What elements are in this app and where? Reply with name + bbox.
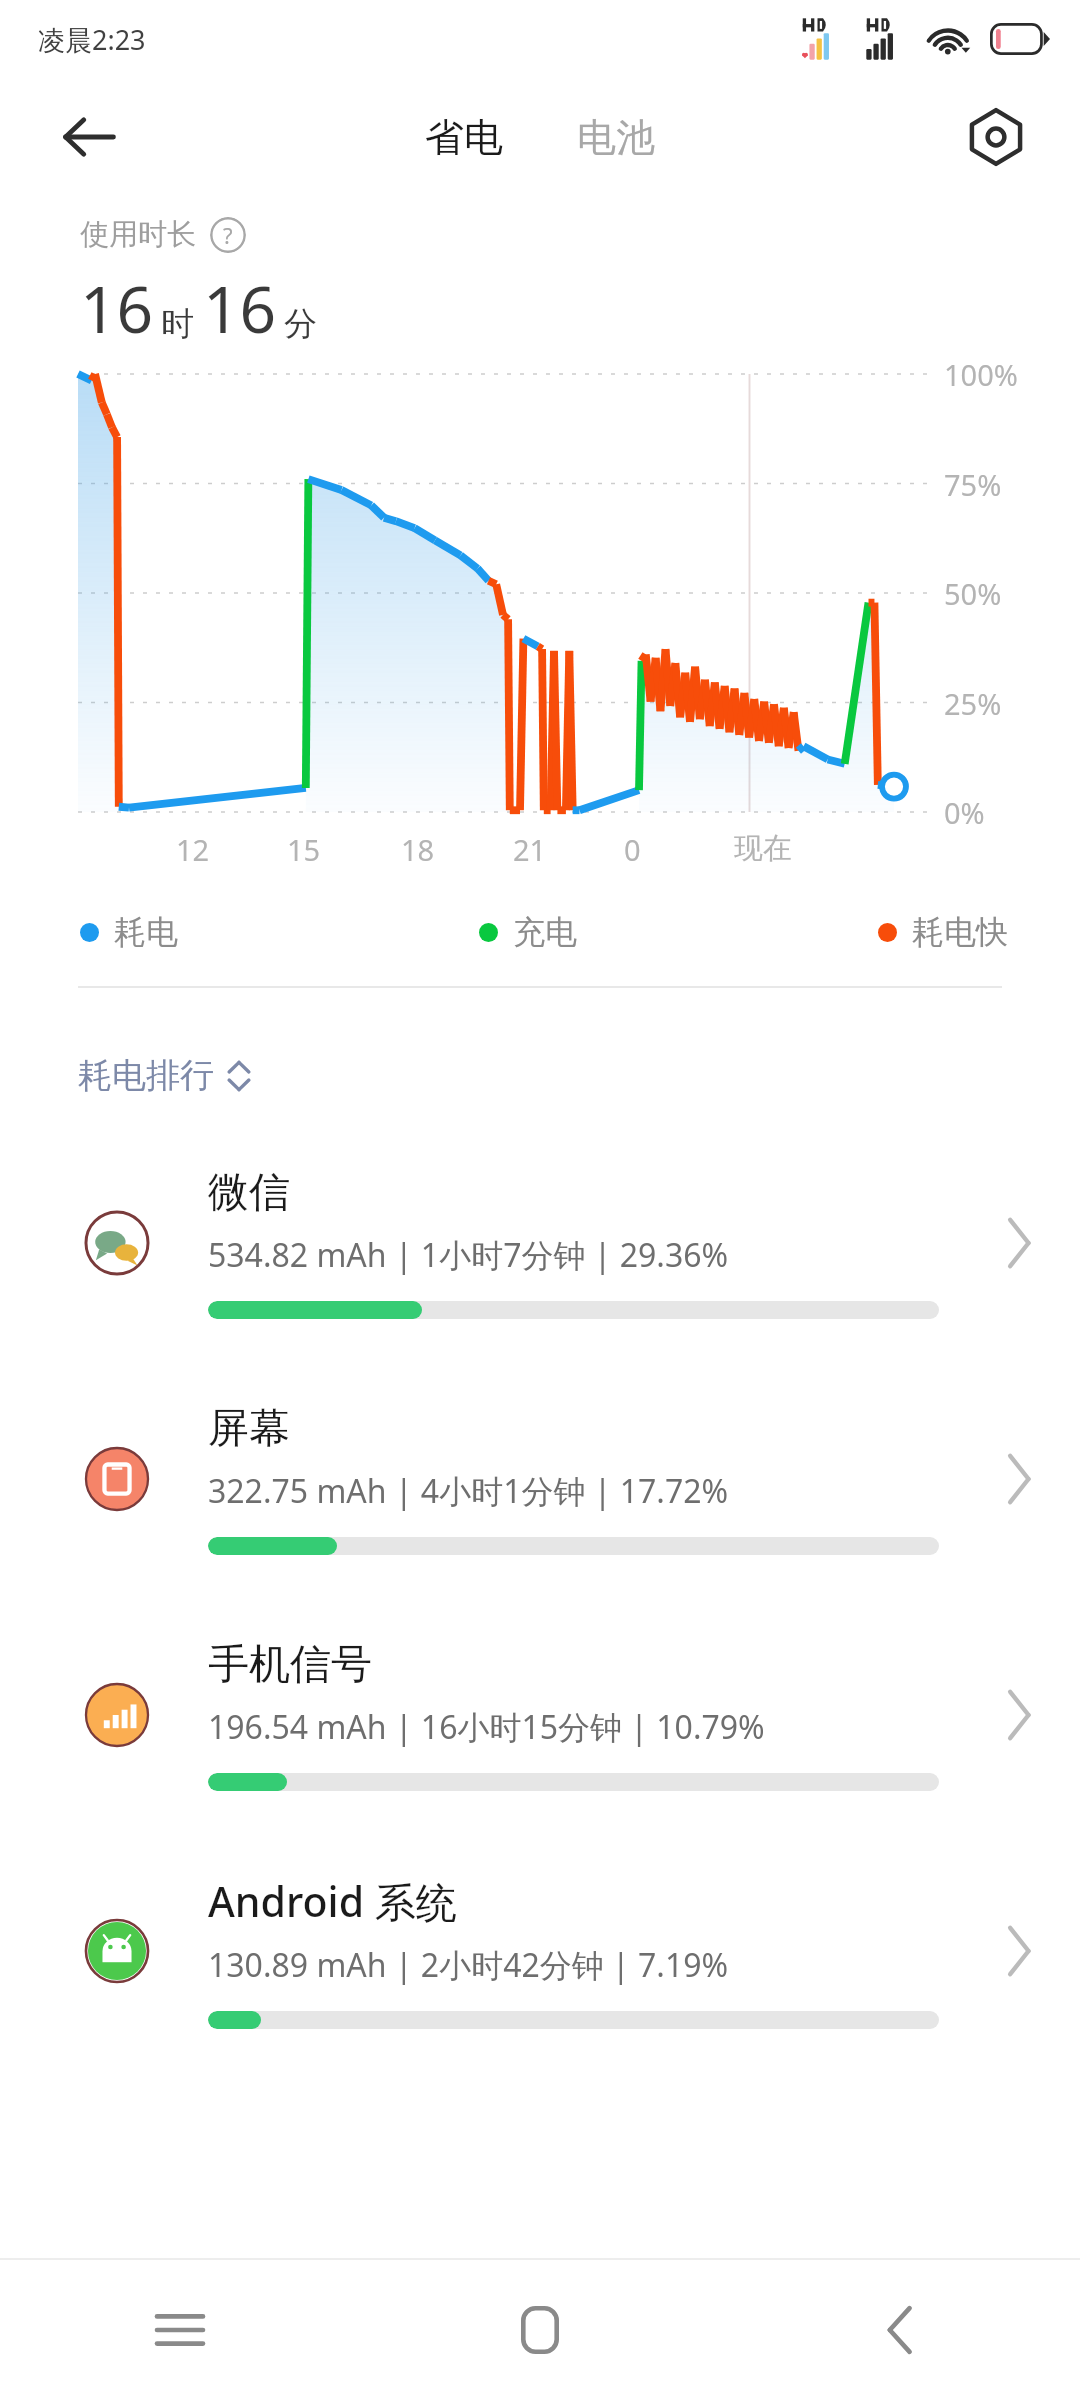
staticText: ? bbox=[223, 220, 233, 250]
staticText: 130.89 mAh | 2小时42分钟 | 7.19% bbox=[208, 1943, 729, 1987]
staticText: 322.75 mAh | 4小时1分钟 | 17.72% bbox=[208, 1469, 729, 1513]
button[interactable]: 屏幕 bbox=[0, 1361, 1080, 1597]
staticText: 耗电快 bbox=[912, 912, 1008, 952]
staticText: 0% bbox=[944, 793, 985, 832]
button[interactable]: Back bbox=[50, 98, 128, 176]
staticText: 凌晨2:23 bbox=[38, 21, 146, 58]
button[interactable]: Settings bbox=[956, 97, 1036, 177]
staticText: 18 bbox=[401, 830, 435, 869]
staticText: 屏幕 bbox=[208, 1403, 290, 1455]
staticText: 现在 bbox=[734, 830, 792, 867]
staticText: 534.82 mAh | 1小时7分钟 | 29.36% bbox=[208, 1233, 729, 1277]
button[interactable]: Back bbox=[720, 2260, 1080, 2400]
staticText: 15 bbox=[287, 830, 321, 869]
staticText: 100% bbox=[944, 355, 1018, 394]
button[interactable]: 省电 bbox=[415, 107, 513, 168]
staticText: Android 系统 bbox=[208, 1873, 457, 1929]
button[interactable]: Recent apps bbox=[0, 2260, 360, 2400]
staticText: 手机信号 bbox=[208, 1639, 372, 1691]
staticText: 50% bbox=[944, 574, 1002, 613]
staticText: 微信 bbox=[208, 1167, 290, 1219]
button[interactable]: Android 系统 bbox=[0, 1833, 1080, 2069]
button[interactable]: 电池 bbox=[567, 107, 665, 168]
staticText: 196.54 mAh | 16小时15分钟 | 10.79% bbox=[208, 1705, 765, 1749]
staticText: 耗电 bbox=[114, 912, 178, 952]
staticText: 省电 bbox=[425, 113, 503, 162]
button[interactable]: 手机信号 bbox=[0, 1597, 1080, 1833]
staticText: 分 bbox=[284, 303, 317, 345]
staticText: 16 bbox=[80, 265, 154, 352]
button[interactable]: 耗电排行 bbox=[66, 1046, 264, 1105]
button[interactable]: Home bbox=[360, 2260, 720, 2400]
button[interactable]: Help bbox=[210, 217, 246, 253]
staticText: 12 bbox=[176, 830, 210, 869]
staticText: 21 bbox=[513, 830, 547, 869]
staticText: 使用时长 bbox=[80, 216, 196, 253]
staticText: 16 bbox=[203, 265, 277, 352]
button[interactable]: 微信 bbox=[0, 1125, 1080, 1361]
staticText: 充电 bbox=[513, 912, 577, 952]
staticText: 0 bbox=[624, 830, 641, 869]
staticText: 电池 bbox=[577, 113, 655, 162]
staticText: 耗电排行 bbox=[78, 1054, 214, 1097]
staticText: 时 bbox=[161, 303, 194, 345]
staticText: 25% bbox=[944, 684, 1002, 723]
staticText: 75% bbox=[944, 465, 1002, 504]
